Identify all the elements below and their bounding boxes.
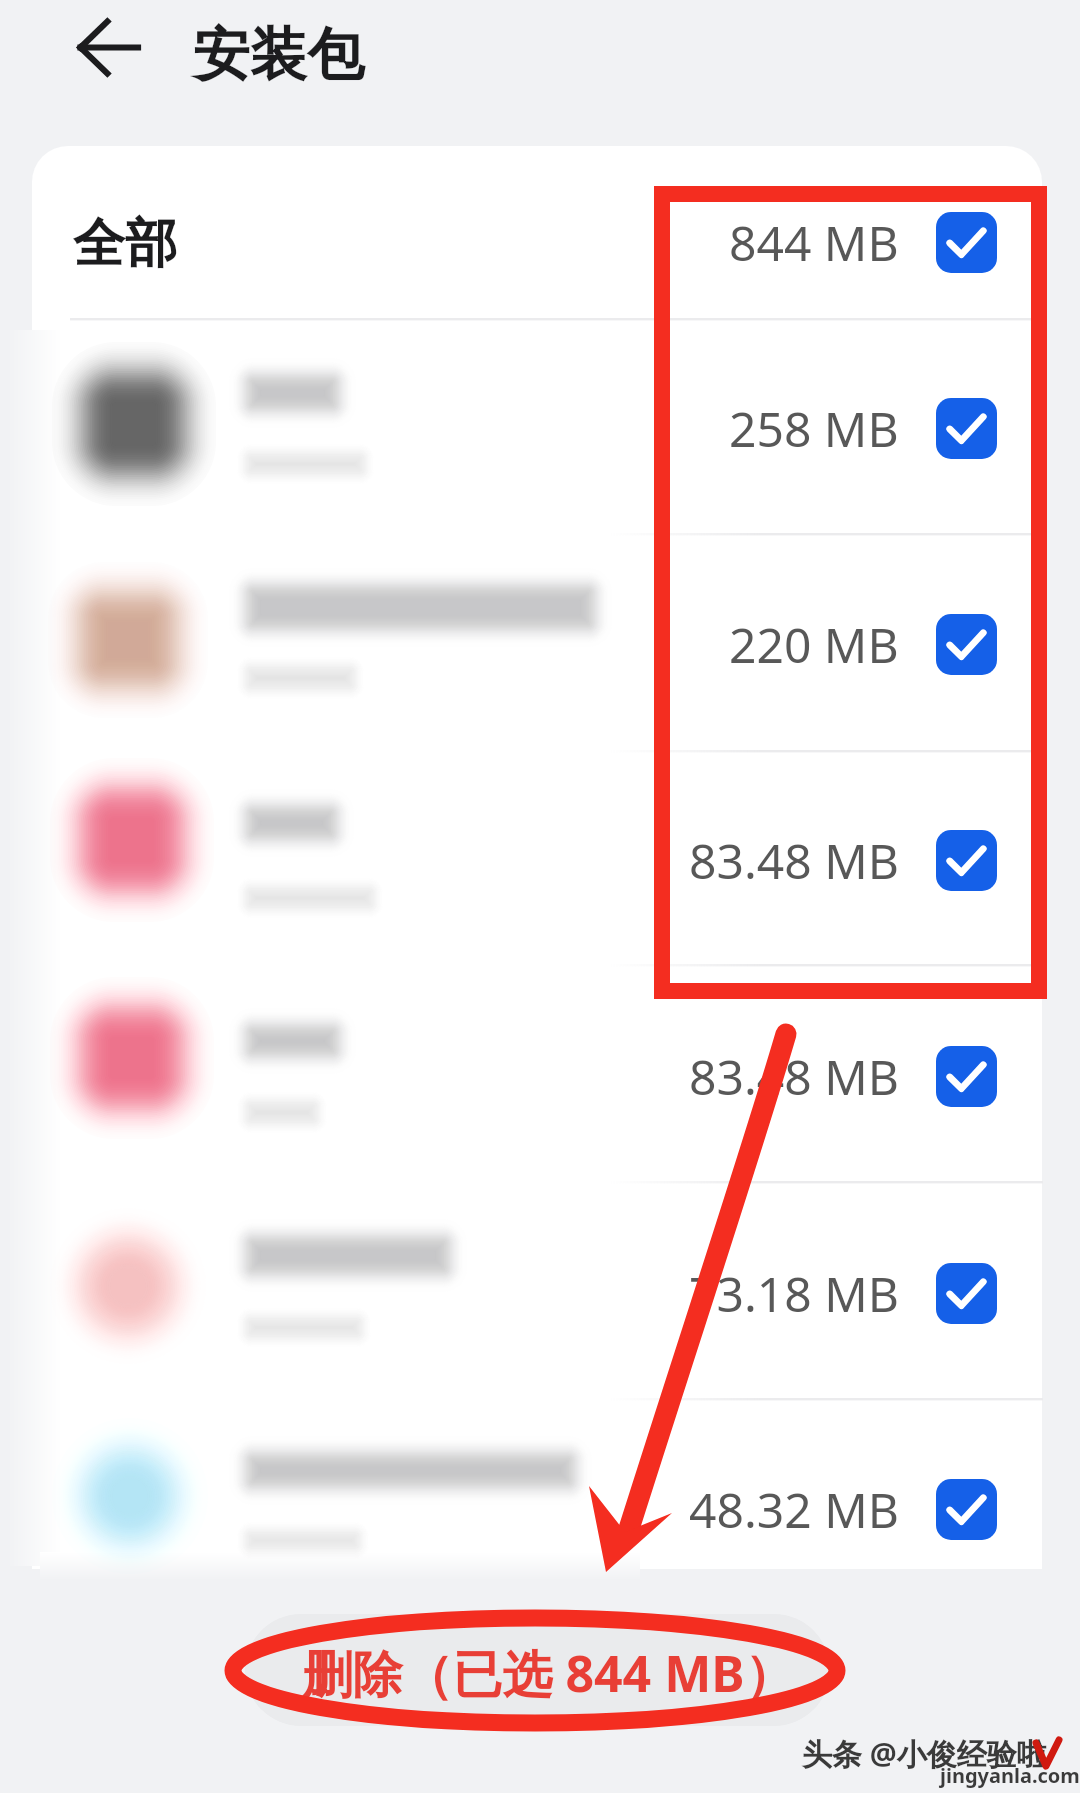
button[interactable]: 220 MB xyxy=(660,574,1043,714)
button[interactable]: Selected, 73.18 MB xyxy=(936,1263,997,1324)
staticText: 安装包 xyxy=(193,19,364,91)
button[interactable]: 73.18 MB xyxy=(660,1223,1043,1363)
staticText: 220 MB xyxy=(729,612,899,677)
button[interactable]: Back xyxy=(48,16,168,78)
staticText: 844 MB xyxy=(729,210,899,275)
button[interactable]: Selected, 258 MB xyxy=(936,398,997,459)
button[interactable]: App package xyxy=(32,319,652,533)
button[interactable]: 48.32 MB xyxy=(660,1439,1043,1579)
button[interactable]: Selected, 83.48 MB xyxy=(936,1046,997,1107)
staticText: 258 MB xyxy=(729,396,899,461)
staticText: 73.18 MB xyxy=(689,1261,899,1326)
staticText: 头条 @小俊经验啦 xyxy=(802,1733,1047,1774)
staticText: 83.48 MB xyxy=(689,828,899,893)
button[interactable]: App package xyxy=(32,1181,652,1398)
staticText: jingyanla.com xyxy=(940,1762,1080,1789)
staticText: 全部 xyxy=(73,211,177,277)
button[interactable]: Selected, 48.32 MB xyxy=(936,1479,997,1540)
staticText: 删除（已选 844 MB） xyxy=(302,1639,795,1707)
button[interactable]: App package xyxy=(32,533,652,750)
button[interactable]: 844 MB xyxy=(660,172,1043,312)
staticText: 48.32 MB xyxy=(689,1477,899,1542)
button[interactable]: Selected, 220 MB xyxy=(936,614,997,675)
button[interactable]: 全部 xyxy=(32,146,1043,319)
button[interactable]: 83.48 MB xyxy=(660,790,1043,930)
button[interactable]: 258 MB xyxy=(660,358,1043,498)
button[interactable]: App package xyxy=(32,964,652,1181)
button[interactable]: Selected, 844 MB xyxy=(936,212,997,273)
button[interactable]: Selected, 83.48 MB xyxy=(936,830,997,891)
button[interactable]: 删除（已选 844 MB） xyxy=(245,1614,830,1726)
button[interactable]: 83.48 MB xyxy=(660,1006,1043,1146)
button[interactable]: App package xyxy=(32,1398,652,1566)
staticText: 83.48 MB xyxy=(689,1044,899,1109)
button[interactable]: 安装包 xyxy=(193,19,364,91)
button[interactable]: App package xyxy=(32,750,652,964)
